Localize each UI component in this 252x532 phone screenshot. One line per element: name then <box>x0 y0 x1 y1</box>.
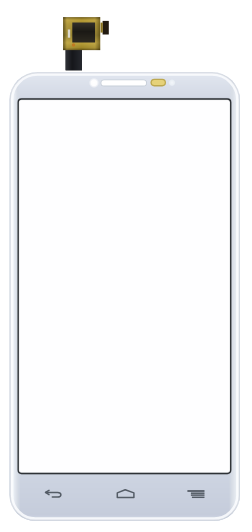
button[interactable]: Phone touch screen digitizer photo <box>0 0 252 532</box>
